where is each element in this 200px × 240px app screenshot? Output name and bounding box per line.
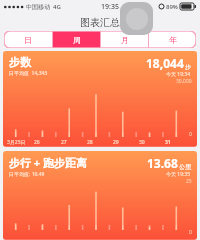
staticText: 3月25日 — [7, 139, 26, 146]
staticText: 图表汇总 — [80, 16, 120, 29]
staticText: 步数 — [9, 55, 31, 69]
staticText: 26 — [34, 139, 40, 146]
staticText: 89% — [166, 3, 178, 11]
staticText: 步 — [185, 63, 191, 71]
staticText: 年 — [169, 35, 177, 45]
staticText: 25 — [186, 178, 192, 185]
staticText: 19:35 — [101, 2, 119, 12]
button[interactable]: 月 — [101, 31, 148, 48]
staticText: 30,000 — [176, 78, 192, 85]
staticText: 日 — [24, 35, 32, 45]
staticText: 中国移动 — [26, 3, 50, 11]
staticText: 日平均值: 10.49 — [9, 171, 45, 178]
button[interactable]: 步数 — [3, 51, 197, 147]
staticText: 公里 — [179, 163, 191, 171]
staticText: 27 — [61, 139, 67, 146]
staticText: 今天 19:35 — [166, 171, 191, 178]
staticText: 今天 19:34 — [166, 71, 191, 78]
button[interactable]: 步行 + 跑步距离 — [3, 151, 197, 240]
staticText: 日平均值 14,345 — [9, 70, 48, 77]
staticText: 30 — [139, 139, 145, 146]
staticText: 28 — [87, 139, 93, 146]
button[interactable]: 周 — [53, 31, 100, 48]
staticText: 0 — [189, 229, 192, 236]
staticText: 周 — [73, 35, 81, 45]
staticText: 18,044 — [146, 55, 184, 71]
staticText: 0 — [189, 131, 192, 138]
staticText: 31 — [165, 139, 171, 146]
staticText: 29 — [113, 139, 119, 146]
staticText: 13.68 — [147, 155, 178, 171]
staticText: 月 — [121, 35, 129, 45]
button[interactable]: 日 — [4, 31, 52, 48]
staticText: 步行 + 跑步距离 — [9, 155, 88, 170]
staticText: 4G — [53, 3, 61, 11]
button[interactable]: 年 — [149, 31, 196, 48]
